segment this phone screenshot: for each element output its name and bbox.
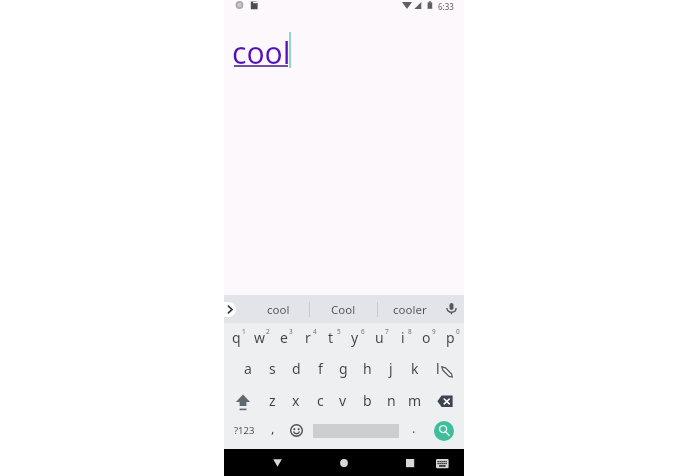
staticText: i: [401, 328, 405, 347]
button[interactable]: More suggestions: [214, 302, 236, 317]
button[interactable]: j: [379, 353, 403, 383]
button[interactable]: Emoji: [285, 416, 307, 444]
staticText: c: [317, 391, 324, 410]
staticText: z: [269, 391, 276, 410]
button[interactable]: y: [343, 322, 367, 352]
staticText: a: [244, 359, 252, 378]
staticText: y: [351, 328, 359, 347]
button[interactable]: Shift: [226, 388, 260, 418]
button[interactable]: f: [308, 353, 332, 383]
button[interactable]: cooler: [380, 296, 440, 324]
button[interactable]: .: [403, 414, 425, 442]
button[interactable]: w: [248, 322, 272, 352]
button[interactable]: Cool: [313, 296, 373, 324]
button[interactable]: z: [260, 385, 284, 415]
button[interactable]: t: [319, 322, 343, 352]
button[interactable]: h: [355, 353, 379, 383]
staticText: r: [305, 328, 311, 347]
staticText: b: [363, 391, 372, 410]
staticText: 7: [385, 327, 389, 336]
staticText: k: [411, 359, 419, 378]
button[interactable]: x: [284, 385, 308, 415]
button[interactable]: q: [224, 322, 248, 352]
button[interactable]: cool: [248, 296, 308, 324]
button[interactable]: c: [308, 385, 332, 415]
staticText: f: [318, 359, 323, 378]
staticText: t: [328, 328, 334, 347]
staticText: v: [339, 391, 347, 410]
staticText: .: [412, 419, 416, 437]
staticText: d: [292, 359, 301, 378]
button[interactable]: l: [426, 353, 450, 383]
staticText: o: [422, 328, 431, 347]
staticText: x: [292, 391, 300, 410]
button[interactable]: g: [331, 353, 355, 383]
staticText: ,: [271, 419, 275, 437]
button[interactable]: o: [414, 322, 438, 352]
button[interactable]: Recent apps: [397, 449, 423, 476]
staticText: Cool: [331, 302, 356, 318]
staticText: cooler: [393, 302, 427, 318]
button[interactable]: n: [379, 385, 403, 415]
button[interactable]: m: [403, 385, 427, 415]
button[interactable]: u: [367, 322, 391, 352]
button[interactable]: Home: [331, 449, 357, 476]
button[interactable]: Space: [309, 416, 403, 444]
staticText: 9: [432, 327, 436, 336]
staticText: cool: [232, 32, 291, 73]
button[interactable]: p: [438, 322, 462, 352]
button[interactable]: d: [284, 353, 308, 383]
button[interactable]: Search: [427, 417, 461, 445]
button[interactable]: s: [260, 353, 284, 383]
button[interactable]: e: [272, 322, 296, 352]
button[interactable]: a: [236, 353, 260, 383]
button[interactable]: ,: [262, 414, 284, 442]
staticText: 2: [266, 327, 270, 336]
button[interactable]: Symbols: [227, 416, 261, 444]
staticText: 6:33: [438, 1, 454, 12]
staticText: ?123: [234, 424, 255, 437]
staticText: j: [389, 359, 393, 378]
staticText: 1: [242, 327, 246, 336]
staticText: p: [446, 328, 455, 347]
staticText: e: [280, 328, 288, 347]
staticText: m: [408, 391, 422, 410]
staticText: 8: [408, 327, 412, 336]
staticText: n: [387, 391, 396, 410]
staticText: w: [254, 328, 266, 347]
staticText: 0: [456, 327, 460, 336]
staticText: s: [269, 359, 276, 378]
staticText: q: [232, 328, 241, 347]
button[interactable]: r: [296, 322, 320, 352]
button[interactable]: Backspace: [428, 386, 462, 416]
button[interactable]: Switch keyboard: [429, 450, 455, 476]
button[interactable]: v: [331, 385, 355, 415]
staticText: l: [436, 359, 440, 378]
button[interactable]: k: [403, 353, 427, 383]
staticText: 4: [313, 327, 317, 336]
button[interactable]: i: [391, 322, 415, 352]
staticText: 3: [289, 327, 293, 336]
staticText: cool: [267, 302, 290, 318]
staticText: 5: [337, 327, 341, 336]
staticText: g: [339, 359, 348, 378]
staticText: 6: [361, 327, 365, 336]
button[interactable]: Back: [264, 449, 290, 476]
button[interactable]: Voice input: [438, 295, 464, 323]
staticText: h: [363, 359, 372, 378]
button[interactable]: b: [355, 385, 379, 415]
staticText: u: [375, 328, 384, 347]
